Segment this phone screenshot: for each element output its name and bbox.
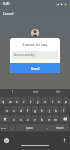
staticText: g <box>34 108 37 112</box>
button[interactable]: the <box>47 89 70 95</box>
staticText: f <box>27 108 29 112</box>
staticText: , <box>12 126 13 130</box>
staticText: x <box>20 117 22 121</box>
button[interactable]: and <box>24 89 47 95</box>
staticText: k <box>55 108 57 112</box>
button[interactable]: u <box>42 97 48 104</box>
button[interactable]: , <box>9 124 15 131</box>
staticText: u <box>44 99 47 103</box>
button[interactable]: o <box>56 97 62 104</box>
staticText: t <box>30 99 32 103</box>
staticText: space <box>26 126 34 130</box>
button[interactable]: I <box>0 89 24 95</box>
staticText: n <box>48 117 51 121</box>
button[interactable]: e <box>14 97 20 104</box>
button[interactable]: Voice input <box>59 135 69 145</box>
staticText: y <box>37 99 39 103</box>
staticText: s <box>13 108 15 112</box>
staticText: j <box>49 108 50 112</box>
staticText: q <box>2 99 5 103</box>
button[interactable]: i <box>49 97 55 104</box>
button[interactable]: ?123 <box>0 124 8 131</box>
staticText: i <box>52 99 53 103</box>
staticText: d <box>20 108 23 112</box>
staticText: I want to say <box>10 42 60 48</box>
button[interactable]: n <box>46 115 52 122</box>
button[interactable]: g <box>32 106 38 113</box>
staticText: ?123 <box>1 126 7 129</box>
button[interactable]: s <box>11 106 17 113</box>
button[interactable]: p <box>63 97 69 104</box>
staticText: m <box>54 117 58 121</box>
button[interactable]: . <box>44 124 50 131</box>
button[interactable]: return <box>50 124 69 131</box>
staticText: Cancel <box>3 11 14 15</box>
button[interactable]: k <box>53 106 59 113</box>
staticText: return <box>56 126 64 130</box>
button[interactable]: b <box>39 115 45 122</box>
button[interactable]: z <box>11 115 17 122</box>
button[interactable]: c <box>25 115 31 122</box>
button[interactable]: a <box>4 106 10 113</box>
button[interactable]: t <box>28 97 34 104</box>
staticText: c <box>27 117 29 121</box>
button[interactable]: l <box>60 106 66 113</box>
staticText: p <box>65 99 68 103</box>
button[interactable]: Shift <box>0 115 10 122</box>
button[interactable]: Accountability <box>12 51 58 59</box>
button[interactable]: Backspace <box>60 115 70 122</box>
staticText: h <box>41 108 44 112</box>
button[interactable]: v <box>32 115 38 122</box>
button[interactable]: space <box>16 124 44 131</box>
button[interactable]: Send <box>10 63 60 73</box>
button[interactable]: d <box>18 106 24 113</box>
staticText: v <box>34 117 36 121</box>
button[interactable]: q <box>0 97 6 104</box>
staticText: . <box>47 126 48 130</box>
button[interactable]: m <box>53 115 59 122</box>
staticText: 8:30 <box>3 2 10 6</box>
staticText: the <box>56 90 61 94</box>
staticText: I <box>12 90 13 94</box>
button[interactable]: Cancel <box>3 11 14 15</box>
staticText: Accountability <box>14 53 36 57</box>
button[interactable]: f <box>25 106 31 113</box>
staticText: b <box>41 117 44 121</box>
button[interactable]: x <box>18 115 24 122</box>
staticText: r <box>23 99 25 103</box>
staticText: e <box>16 99 18 103</box>
button[interactable]: h <box>39 106 45 113</box>
staticText: a <box>6 108 8 112</box>
button[interactable]: y <box>35 97 41 104</box>
button[interactable]: Emoji <box>1 135 11 145</box>
button[interactable]: r <box>21 97 27 104</box>
staticText: Send <box>31 66 40 71</box>
button[interactable]: Profile photo <box>31 29 39 37</box>
button[interactable]: j <box>46 106 52 113</box>
staticText: z <box>13 117 15 121</box>
staticText: w <box>9 99 12 103</box>
button[interactable]: w <box>7 97 13 104</box>
staticText: and <box>33 90 39 94</box>
staticText: l <box>63 108 64 112</box>
staticText: o <box>58 99 60 103</box>
